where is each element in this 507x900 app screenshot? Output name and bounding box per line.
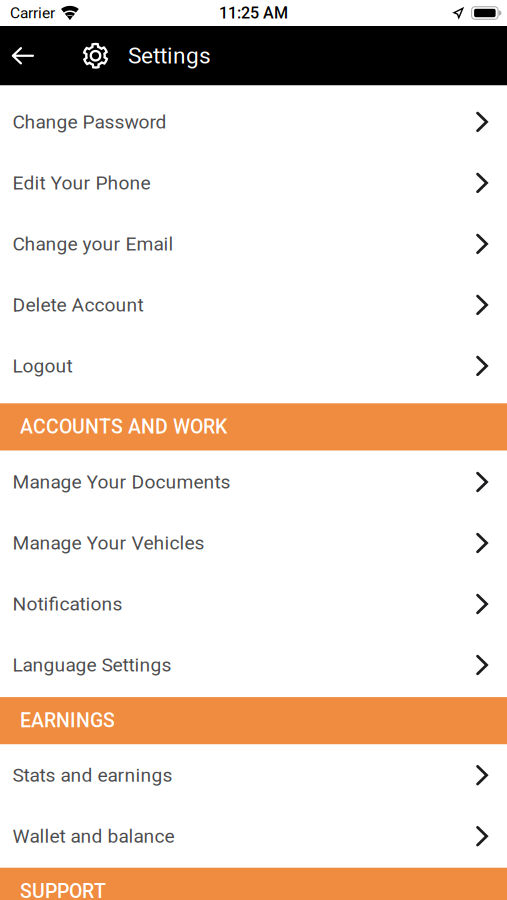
- button[interactable]: Back: [0, 26, 48, 85]
- button[interactable]: Edit Your Phone: [0, 152, 507, 213]
- staticText: Change Password: [13, 111, 167, 133]
- button[interactable]: Notifications: [0, 573, 507, 634]
- staticText: Notifications: [13, 593, 123, 615]
- staticText: Carrier: [10, 4, 55, 22]
- staticText: Settings: [128, 42, 211, 69]
- staticText: Manage Your Vehicles: [13, 532, 205, 554]
- button[interactable]: Delete Account: [0, 274, 507, 335]
- button[interactable]: Manage Your Vehicles: [0, 512, 507, 573]
- button[interactable]: Stats and earnings: [0, 745, 507, 806]
- staticText: Change your Email: [13, 233, 174, 255]
- staticText: Manage Your Documents: [13, 471, 231, 493]
- staticText: Stats and earnings: [13, 764, 173, 786]
- button[interactable]: Change Password: [0, 91, 507, 152]
- staticText: EARNINGS: [20, 709, 115, 732]
- staticText: ACCOUNTS AND WORK: [20, 415, 227, 438]
- button[interactable]: Settings: [48, 26, 211, 85]
- staticText: Logout: [13, 355, 73, 377]
- staticText: Delete Account: [13, 294, 144, 316]
- button[interactable]: Logout: [0, 335, 507, 396]
- staticText: Edit Your Phone: [13, 172, 151, 194]
- button[interactable]: Wallet and balance: [0, 806, 507, 867]
- button[interactable]: Language Settings: [0, 634, 507, 695]
- staticText: Wallet and balance: [13, 825, 175, 847]
- staticText: 11:25 AM: [219, 3, 288, 22]
- staticText: SUPPORT: [20, 880, 106, 900]
- button[interactable]: Manage Your Documents: [0, 451, 507, 512]
- staticText: Language Settings: [13, 654, 172, 676]
- button[interactable]: Change your Email: [0, 213, 507, 274]
